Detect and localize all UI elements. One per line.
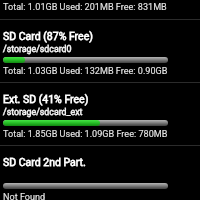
button[interactable]: SD Card (87% Free) — [0, 19, 200, 82]
staticText: Total: 1.85GB Used: 1.09GB Free: 780MB — [3, 129, 168, 140]
staticText: /storage/sdcard0 — [3, 44, 72, 54]
staticText: Not Found — [3, 192, 46, 200]
staticText: SD Card 2nd Part. — [3, 156, 86, 168]
staticText: Total: 1.01GB Used: 201MB Free: 831MB — [3, 2, 167, 13]
staticText: Total: 1.03GB Used: 132MB Free: 0.90GB — [3, 66, 168, 77]
button[interactable]: SD Card 2nd Part. — [0, 145, 200, 200]
button[interactable]: Ext. SD (41% Free) — [0, 82, 200, 145]
staticText: Ext. SD (41% Free) — [3, 93, 89, 105]
staticText: SD Card (87% Free) — [3, 30, 93, 42]
staticText: /storage/sdcard_ext — [3, 107, 83, 117]
